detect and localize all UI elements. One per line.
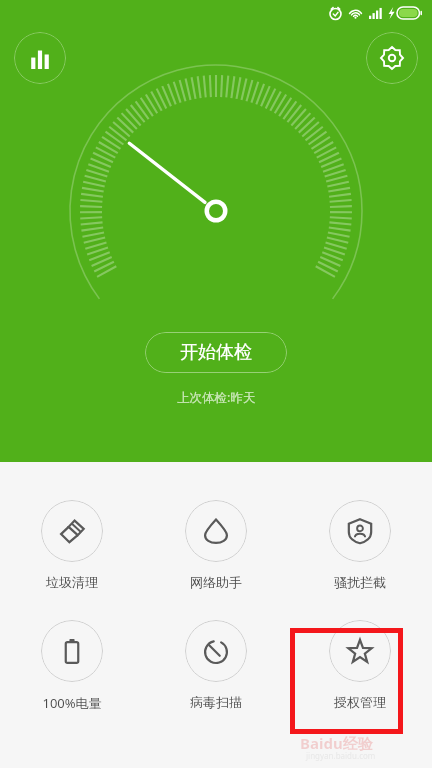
staticText: 上次体检:昨天: [177, 389, 256, 406]
button[interactable]: 病毒扫描: [144, 620, 288, 710]
staticText: Baidu经验: [300, 733, 373, 753]
button[interactable]: 骚扰拦截: [288, 500, 432, 590]
button[interactable]: 网络助手: [144, 500, 288, 590]
button[interactable]: Settings: [366, 32, 418, 84]
staticText: 开始体检: [180, 341, 252, 364]
button[interactable]: 100%电量: [0, 620, 144, 712]
staticText: 骚扰拦截: [334, 574, 386, 590]
staticText: jingyan.baidu.com: [306, 750, 376, 761]
staticText: 网络助手: [190, 574, 242, 590]
button[interactable]: 授权管理: [288, 620, 432, 710]
button[interactable]: 开始体检: [145, 332, 287, 373]
staticText: 授权管理: [334, 694, 386, 710]
staticText: 垃圾清理: [46, 574, 98, 590]
button[interactable]: Statistics: [14, 32, 66, 84]
staticText: 100%电量: [42, 694, 102, 712]
button[interactable]: 垃圾清理: [0, 500, 144, 590]
staticText: 病毒扫描: [190, 694, 242, 710]
